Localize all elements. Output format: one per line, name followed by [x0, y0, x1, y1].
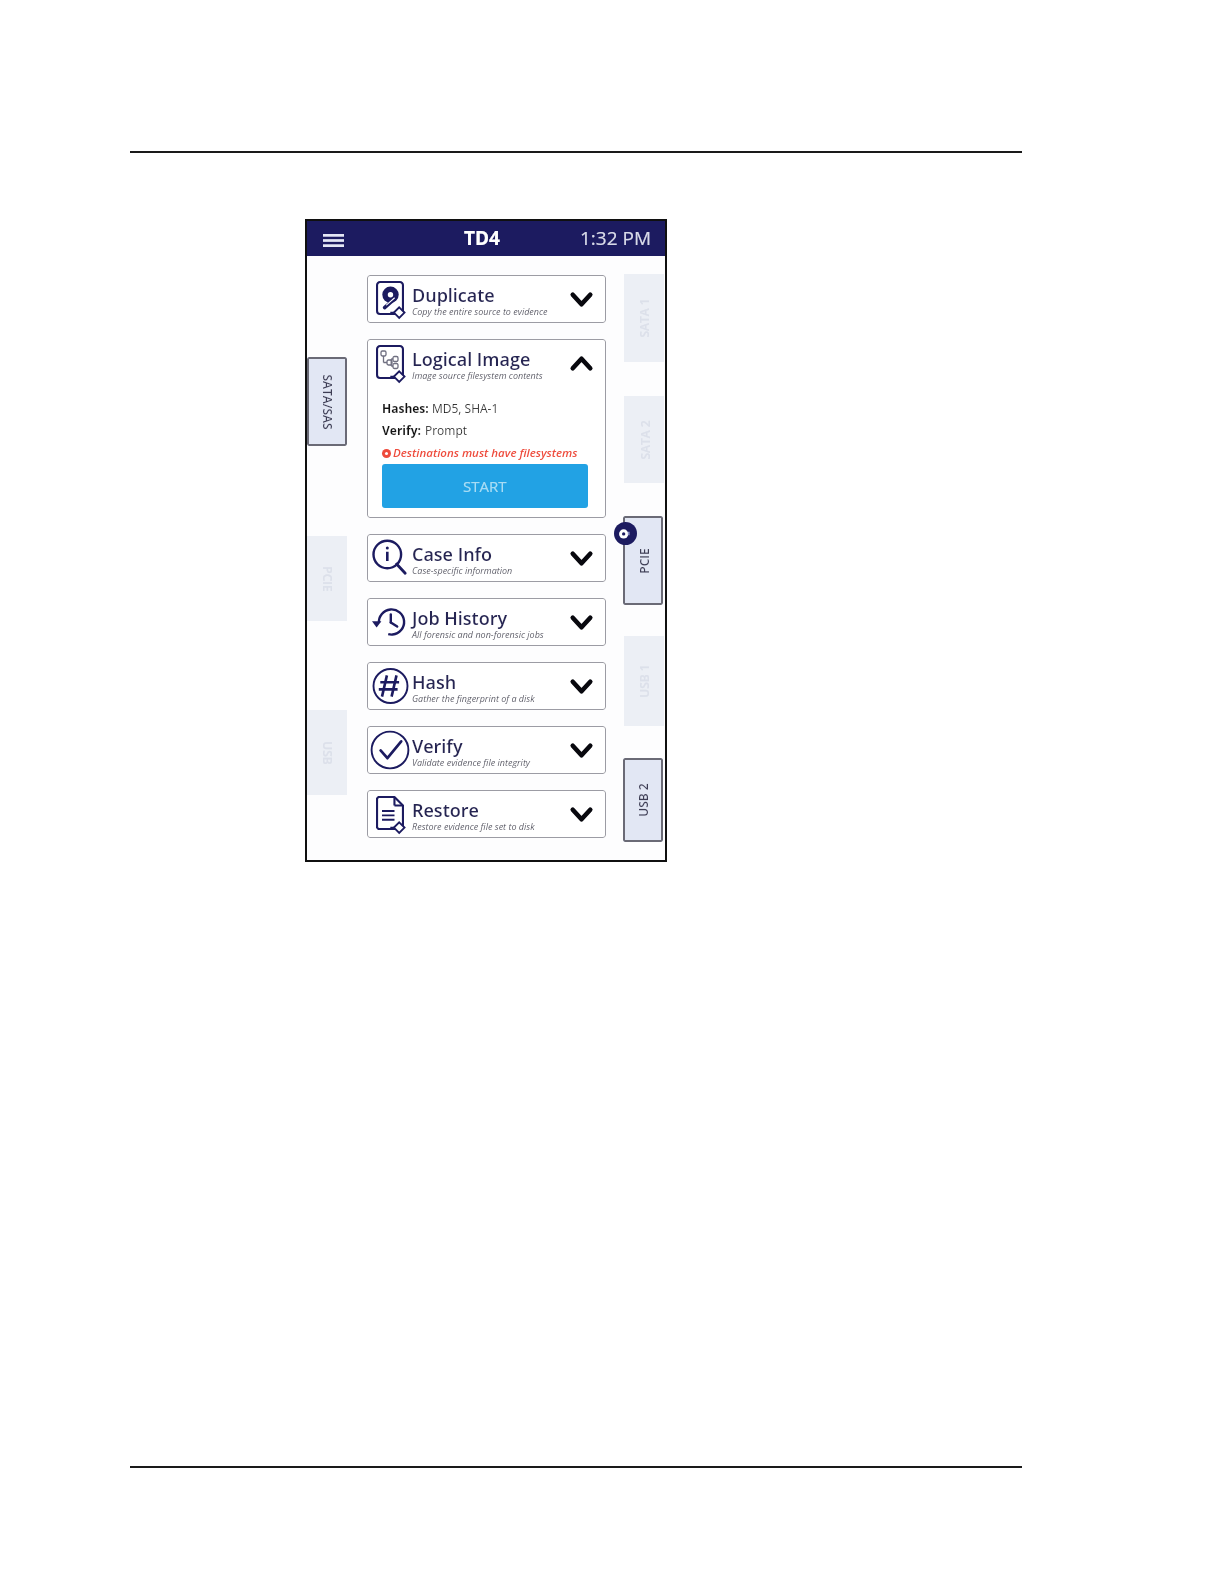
staticText: Verify [412, 734, 463, 759]
staticText: PCIE [319, 536, 335, 621]
staticText: Case Info [412, 542, 493, 567]
staticText: TD4 [464, 225, 500, 251]
staticText: Image source filesystem contents [412, 369, 543, 381]
staticText: SATA 2 [636, 396, 652, 483]
staticText: Job History [412, 606, 508, 631]
staticText: All forensic and non-forensic jobs [412, 628, 544, 640]
staticText: Duplicate [412, 283, 495, 308]
button[interactable]: Restore [367, 790, 606, 838]
staticText: Validate evidence file integrity [412, 756, 531, 768]
staticText: START [463, 476, 507, 496]
button[interactable]: PCIE connected [614, 522, 637, 545]
button[interactable]: Verify [367, 726, 606, 774]
staticText: 1:32 PM [580, 225, 652, 251]
staticText: Logical Image [412, 347, 531, 372]
staticText: Restore evidence file set to disk [412, 820, 535, 832]
staticText: Gather the fingerprint of a disk [412, 692, 535, 704]
button[interactable]: PCIE [623, 516, 663, 605]
button[interactable]: START [382, 464, 588, 508]
staticText: SATA/SAS [319, 357, 335, 446]
staticText: SATA 1 [636, 274, 652, 362]
staticText: Hashes: [382, 400, 432, 416]
staticText: Verify: [382, 422, 425, 438]
button[interactable]: SATA/SAS [307, 357, 347, 446]
staticText: Prompt [425, 422, 468, 438]
button[interactable]: Case Info [367, 534, 606, 582]
button[interactable]: Menu [323, 228, 349, 253]
staticText: Restore [412, 798, 479, 823]
staticText: Destinations must have filesystems [393, 445, 578, 461]
staticText: USB [319, 710, 335, 795]
button[interactable]: Logical Image [367, 339, 606, 518]
button[interactable]: USB 2 [623, 758, 663, 842]
staticText: PCIE [635, 516, 651, 605]
staticText: USB 2 [635, 758, 651, 842]
staticText: Copy the entire source to evidence [412, 305, 548, 317]
button[interactable]: Hash [367, 662, 606, 710]
staticText: USB 1 [636, 636, 652, 726]
staticText: MD5, SHA-1 [432, 400, 499, 416]
button[interactable]: Job History [367, 598, 606, 646]
button[interactable]: Duplicate [367, 275, 606, 323]
staticText: Hash [412, 670, 457, 695]
staticText: Case-specific information [412, 564, 513, 576]
